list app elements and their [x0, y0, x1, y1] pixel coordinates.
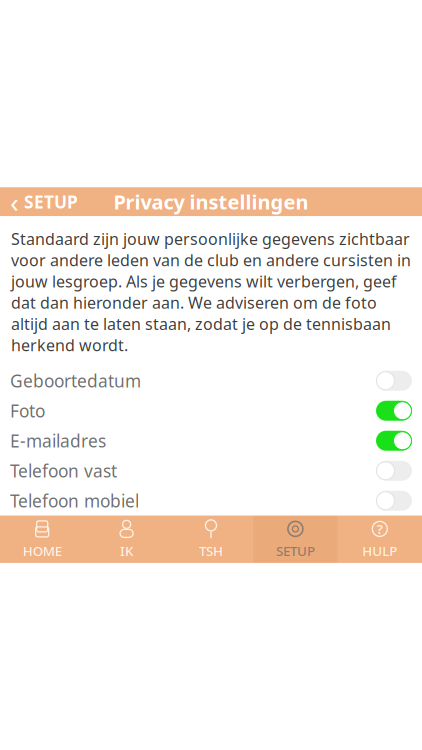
button[interactable]: IK	[84, 516, 169, 563]
staticText: Telefoon vast	[10, 459, 117, 482]
staticText: Standaard zijn jouw persoonlijke gegeven…	[11, 228, 411, 356]
staticText: HOME	[23, 542, 62, 560]
button[interactable]: SETUP	[253, 516, 338, 563]
button[interactable]: Telefoon vast	[0, 456, 422, 486]
button[interactable]: ‹	[0, 187, 88, 216]
staticText: SETUP	[24, 190, 78, 213]
button[interactable]: Telefoon mobiel	[0, 486, 422, 516]
staticText: ‹	[10, 183, 19, 220]
button[interactable]: Aan	[376, 401, 412, 421]
button[interactable]: Uit	[376, 371, 412, 391]
staticText: ?	[377, 520, 383, 538]
button[interactable]: ?	[338, 516, 422, 563]
staticText: Geboortedatum	[10, 369, 141, 392]
button[interactable]: TSH	[169, 516, 253, 563]
button[interactable]: Geboortedatum	[0, 366, 422, 396]
staticText: IK	[120, 542, 133, 560]
button[interactable]: HOME	[0, 516, 84, 563]
staticText: SETUP	[276, 542, 315, 560]
staticText: Foto	[10, 399, 45, 422]
staticText: E-mailadres	[10, 429, 106, 452]
button[interactable]: Aan	[376, 431, 412, 451]
staticText: HULP	[362, 542, 397, 560]
staticText: Privacy instellingen	[113, 188, 308, 215]
button[interactable]: E-mailadres	[0, 426, 422, 456]
staticText: TSH	[199, 542, 223, 560]
button[interactable]: Foto	[0, 396, 422, 426]
button[interactable]: Uit	[376, 461, 412, 481]
button[interactable]: Uit	[376, 491, 412, 511]
staticText: Telefoon mobiel	[10, 489, 139, 512]
